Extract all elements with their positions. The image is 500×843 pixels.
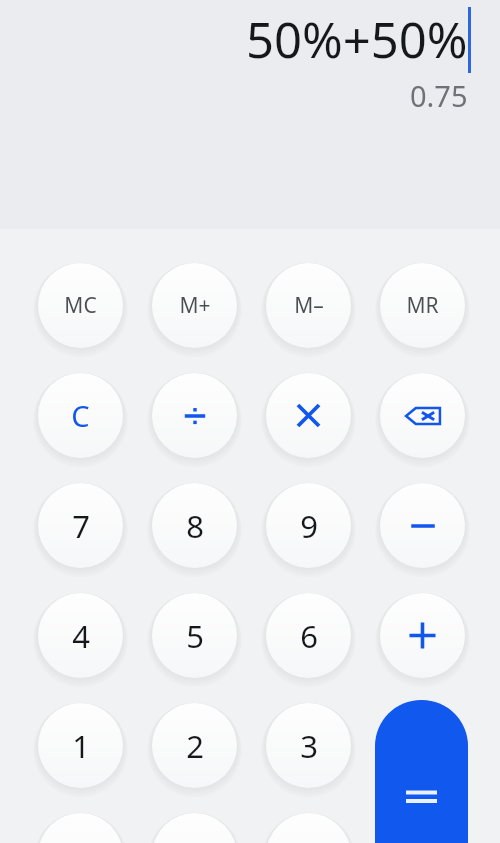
button[interactable]: 2 (152, 703, 237, 788)
staticText: 8 (186, 505, 204, 547)
staticText: MR (406, 291, 439, 320)
staticText: 7 (72, 505, 90, 547)
button[interactable]: 9 (266, 483, 351, 568)
button[interactable]: Backspace (380, 373, 465, 458)
button[interactable]: Plus (380, 593, 465, 678)
staticText: 3 (300, 725, 318, 767)
button[interactable]: 1 (38, 703, 123, 788)
button[interactable]: 5 (152, 593, 237, 678)
staticText: M– (294, 291, 324, 320)
button[interactable]: 4 (38, 593, 123, 678)
staticText: 2 (186, 725, 204, 767)
button[interactable]: % (38, 813, 123, 843)
button[interactable]: . (266, 813, 351, 843)
button[interactable]: 3 (266, 703, 351, 788)
button[interactable]: 6 (266, 593, 351, 678)
staticText: 4 (72, 615, 90, 657)
staticText: 1 (72, 725, 90, 767)
button[interactable]: MR (380, 263, 465, 348)
button[interactable]: Multiply (266, 373, 351, 458)
staticText: 5 (186, 615, 204, 657)
button[interactable]: M– (266, 263, 351, 348)
button[interactable]: Minus (380, 483, 465, 568)
staticText: C (71, 396, 90, 435)
staticText: 50%+50% (246, 6, 468, 73)
button[interactable]: 8 (152, 483, 237, 568)
staticText: M+ (179, 291, 211, 320)
staticText: MC (64, 291, 97, 320)
button[interactable]: MC (38, 263, 123, 348)
button[interactable]: 0 (152, 813, 237, 843)
button[interactable]: M+ (152, 263, 237, 348)
button[interactable]: Equals (375, 700, 468, 843)
staticText: 0.75 (410, 76, 468, 115)
staticText: 6 (300, 615, 318, 657)
button[interactable]: Divide (152, 373, 237, 458)
button[interactable]: 7 (38, 483, 123, 568)
button[interactable]: C (38, 373, 123, 458)
staticText: 9 (300, 505, 318, 547)
